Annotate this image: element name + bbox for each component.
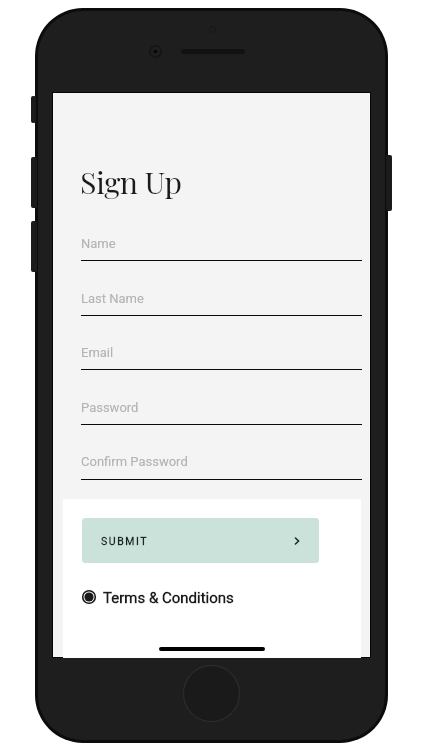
button[interactable]: Terms & Conditions	[77, 585, 234, 609]
staticText: SUBMIT	[101, 535, 149, 547]
button[interactable]: Email	[81, 345, 114, 360]
staticText: Sign Up	[80, 161, 182, 202]
button[interactable]: Home	[181, 663, 242, 724]
button[interactable]: Password	[81, 400, 139, 415]
button[interactable]: SUBMIT	[82, 518, 319, 563]
button[interactable]: Confirm Password	[81, 454, 188, 469]
button[interactable]: Last Name	[81, 291, 144, 306]
button[interactable]: Name	[81, 236, 116, 251]
staticText: Terms & Conditions	[103, 589, 234, 607]
